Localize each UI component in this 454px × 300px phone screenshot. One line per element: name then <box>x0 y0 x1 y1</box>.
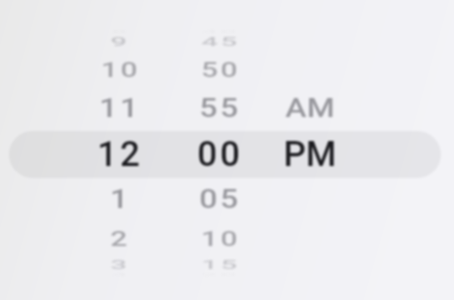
staticText: 10 <box>101 57 140 82</box>
staticText: 00 <box>197 134 243 175</box>
staticText: 3 <box>110 258 130 273</box>
button[interactable]: Hour 9 <box>65 17 175 67</box>
staticText: 55 <box>199 93 241 123</box>
button[interactable]: Minute 00 <box>165 129 275 179</box>
button[interactable]: Hour 2 <box>65 213 175 263</box>
staticText: 12 <box>97 134 143 175</box>
button[interactable]: Minute 55 <box>165 83 275 133</box>
staticText: 1 <box>110 184 131 214</box>
staticText: 2 <box>110 226 130 251</box>
staticText: 45 <box>201 35 240 50</box>
button[interactable]: Minute 20 <box>165 250 275 300</box>
staticText: AM <box>285 93 335 123</box>
button[interactable]: Period PM <box>255 129 365 179</box>
button[interactable]: Hour 11 <box>65 83 175 133</box>
staticText: 9 <box>110 35 130 50</box>
staticText: 05 <box>199 184 241 214</box>
button[interactable]: Minute 50 <box>165 44 275 94</box>
button[interactable]: Minute 05 <box>165 174 275 224</box>
button[interactable]: Minute 10 <box>165 213 275 263</box>
staticText: 10 <box>201 226 240 251</box>
button[interactable]: Minute 40 <box>165 7 275 57</box>
button[interactable]: Minute 45 <box>165 17 275 67</box>
button[interactable]: Period AM <box>255 83 365 133</box>
button[interactable]: Hour 12 <box>65 129 175 179</box>
button[interactable]: Hour 1 <box>65 174 175 224</box>
button[interactable]: Hour 10 <box>65 44 175 94</box>
staticText: 15 <box>201 258 240 273</box>
staticText: PM <box>283 134 337 175</box>
button[interactable]: Hour 3 <box>65 240 175 290</box>
button[interactable]: Minute 15 <box>165 240 275 290</box>
staticText: 11 <box>99 93 141 123</box>
button[interactable]: Hour 8 <box>65 7 175 57</box>
staticText: 50 <box>201 57 240 82</box>
